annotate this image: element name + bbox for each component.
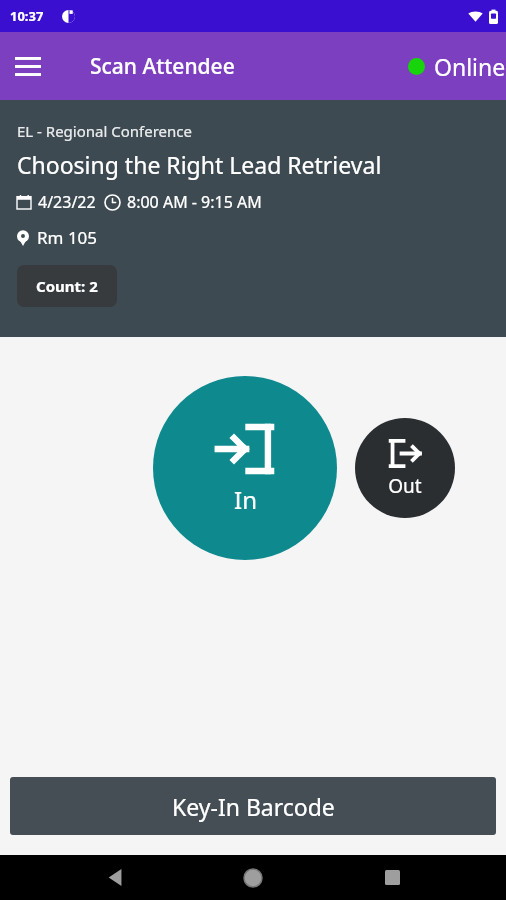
staticText: 8:00 AM - 9:15 AM (127, 191, 262, 213)
staticText: EL - Regional Conference (17, 121, 192, 141)
button[interactable]: Out (355, 418, 455, 518)
button[interactable]: Back (91, 855, 139, 900)
staticText: Key-In Barcode (172, 791, 335, 822)
staticText: 4/23/22 (38, 191, 96, 213)
button[interactable]: Count: 2 (17, 265, 117, 307)
staticText: In (234, 483, 257, 516)
staticText: Online (434, 51, 506, 82)
button[interactable]: Home (229, 855, 277, 900)
button[interactable]: Recent apps (368, 855, 416, 900)
button[interactable]: In (153, 376, 337, 560)
staticText: Choosing the Right Lead Retrieval (17, 149, 382, 180)
staticText: 10:37 (10, 7, 44, 25)
staticText: Rm 105 (37, 226, 98, 249)
staticText: Out (388, 473, 422, 499)
button[interactable]: Online (408, 51, 506, 82)
staticText: Count: 2 (36, 276, 98, 296)
button[interactable]: Open navigation menu (4, 42, 52, 90)
button[interactable]: Key-In Barcode (10, 777, 496, 835)
staticText: Scan Attendee (90, 52, 235, 81)
